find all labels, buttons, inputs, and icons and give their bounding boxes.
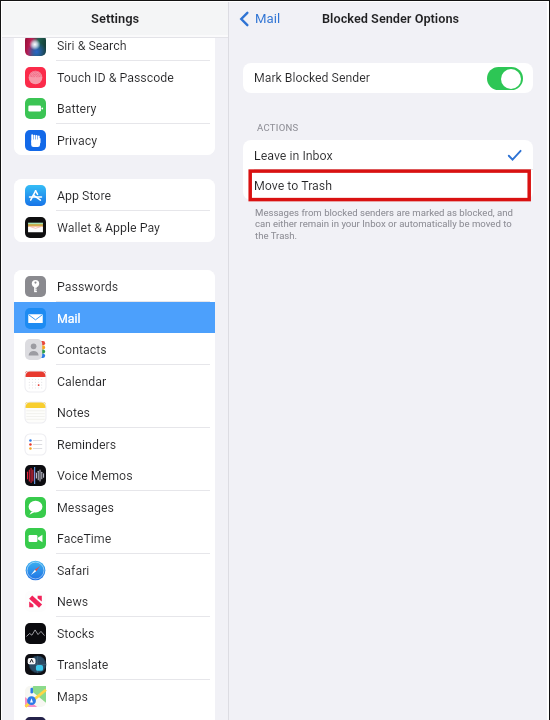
staticText: Safari <box>57 563 90 578</box>
staticText: Reminders <box>57 437 117 452</box>
staticText: Blocked Sender Options <box>322 11 460 26</box>
button[interactable]: FaceTime <box>14 522 215 554</box>
button[interactable]: Move to Trash <box>243 170 533 200</box>
button[interactable]: Back to Mail <box>235 7 286 30</box>
staticText: ACTIONS <box>257 122 299 133</box>
staticText: Passwords <box>57 279 119 294</box>
button[interactable]: Leave in Inbox <box>243 140 533 170</box>
staticText: Calendar <box>57 374 107 389</box>
staticText: Privacy <box>57 133 98 148</box>
button[interactable]: Siri & Search <box>14 29 215 61</box>
button[interactable]: Passwords <box>14 270 215 302</box>
button[interactable]: Touch ID & Passcode <box>14 61 215 93</box>
button[interactable]: Translate <box>14 648 215 680</box>
button[interactable]: Messages <box>14 491 215 523</box>
staticText: Maps <box>57 689 88 704</box>
button[interactable]: Safari <box>14 554 215 586</box>
button[interactable]: Mark Blocked Sender <box>243 63 533 93</box>
staticText: Mail <box>255 11 281 26</box>
staticText: Contacts <box>57 342 107 357</box>
staticText: Move to Trash <box>254 178 333 193</box>
staticText: Battery <box>57 101 97 116</box>
staticText: Translate <box>57 657 109 672</box>
staticText: Messages <box>57 500 114 515</box>
staticText: Siri & Search <box>57 38 127 53</box>
button[interactable]: Stocks <box>14 617 215 649</box>
button[interactable]: Voice Memos <box>14 459 215 491</box>
button[interactable]: Mark Blocked Sender toggle, on <box>487 67 523 90</box>
button[interactable]: Maps <box>14 680 215 712</box>
staticText: Mail <box>57 311 81 326</box>
button[interactable]: News <box>14 585 215 617</box>
staticText: Stocks <box>57 626 95 641</box>
button[interactable]: Wallet & Apple Pay <box>14 211 215 242</box>
staticText: Settings <box>91 11 140 26</box>
staticText: Notes <box>57 405 90 420</box>
staticText: Voice Memos <box>57 468 133 483</box>
staticText: Wallet & Apple Pay <box>57 220 160 235</box>
staticText: News <box>57 594 89 609</box>
button[interactable]: Mail <box>14 302 215 334</box>
button[interactable]: Privacy <box>14 124 215 155</box>
staticText: FaceTime <box>57 531 112 546</box>
button[interactable]: Reminders <box>14 428 215 460</box>
staticText: Messages from blocked senders are marked… <box>255 207 527 242</box>
button[interactable]: Battery <box>14 92 215 124</box>
button[interactable]: Contacts <box>14 333 215 365</box>
button[interactable]: App Store <box>14 179 215 211</box>
button[interactable]: Notes <box>14 396 215 428</box>
staticText: Mark Blocked Sender <box>254 71 370 85</box>
staticText: Touch ID & Passcode <box>57 70 174 85</box>
staticText: App Store <box>57 188 112 203</box>
button[interactable]: Calendar <box>14 365 215 397</box>
staticText: Leave in Inbox <box>254 148 333 163</box>
button[interactable]: Home <box>14 711 215 720</box>
